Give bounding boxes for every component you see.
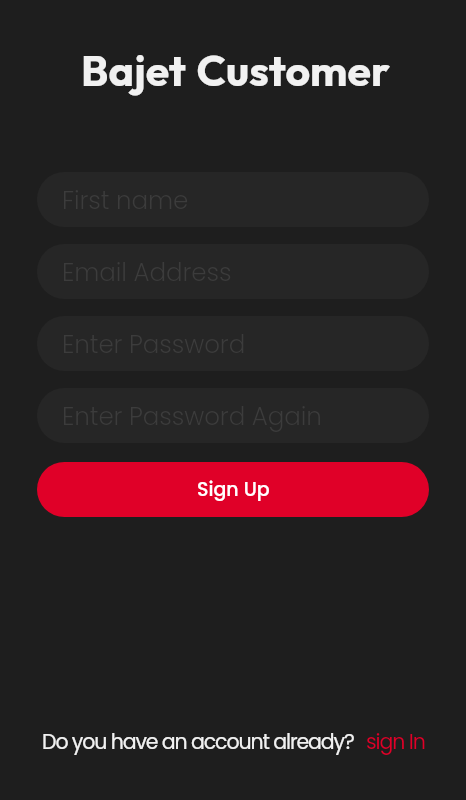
- staticText: Enter Password: [62, 327, 246, 361]
- staticText: Enter Password Again: [62, 399, 322, 433]
- staticText: Sign Up: [197, 476, 270, 503]
- staticText: Do you have an account already?: [42, 727, 354, 756]
- button[interactable]: sign In: [366, 727, 425, 756]
- staticText: sign In: [366, 727, 425, 756]
- staticText: Email Address: [62, 255, 232, 289]
- button[interactable]: First name: [37, 172, 429, 227]
- button[interactable]: Email Address: [37, 244, 429, 299]
- staticText: Bajet Customer: [5, 43, 466, 97]
- button[interactable]: Sign Up: [37, 462, 429, 517]
- staticText: First name: [62, 183, 189, 217]
- button[interactable]: Enter Password: [37, 316, 429, 371]
- button[interactable]: Enter Password Again: [37, 388, 429, 443]
